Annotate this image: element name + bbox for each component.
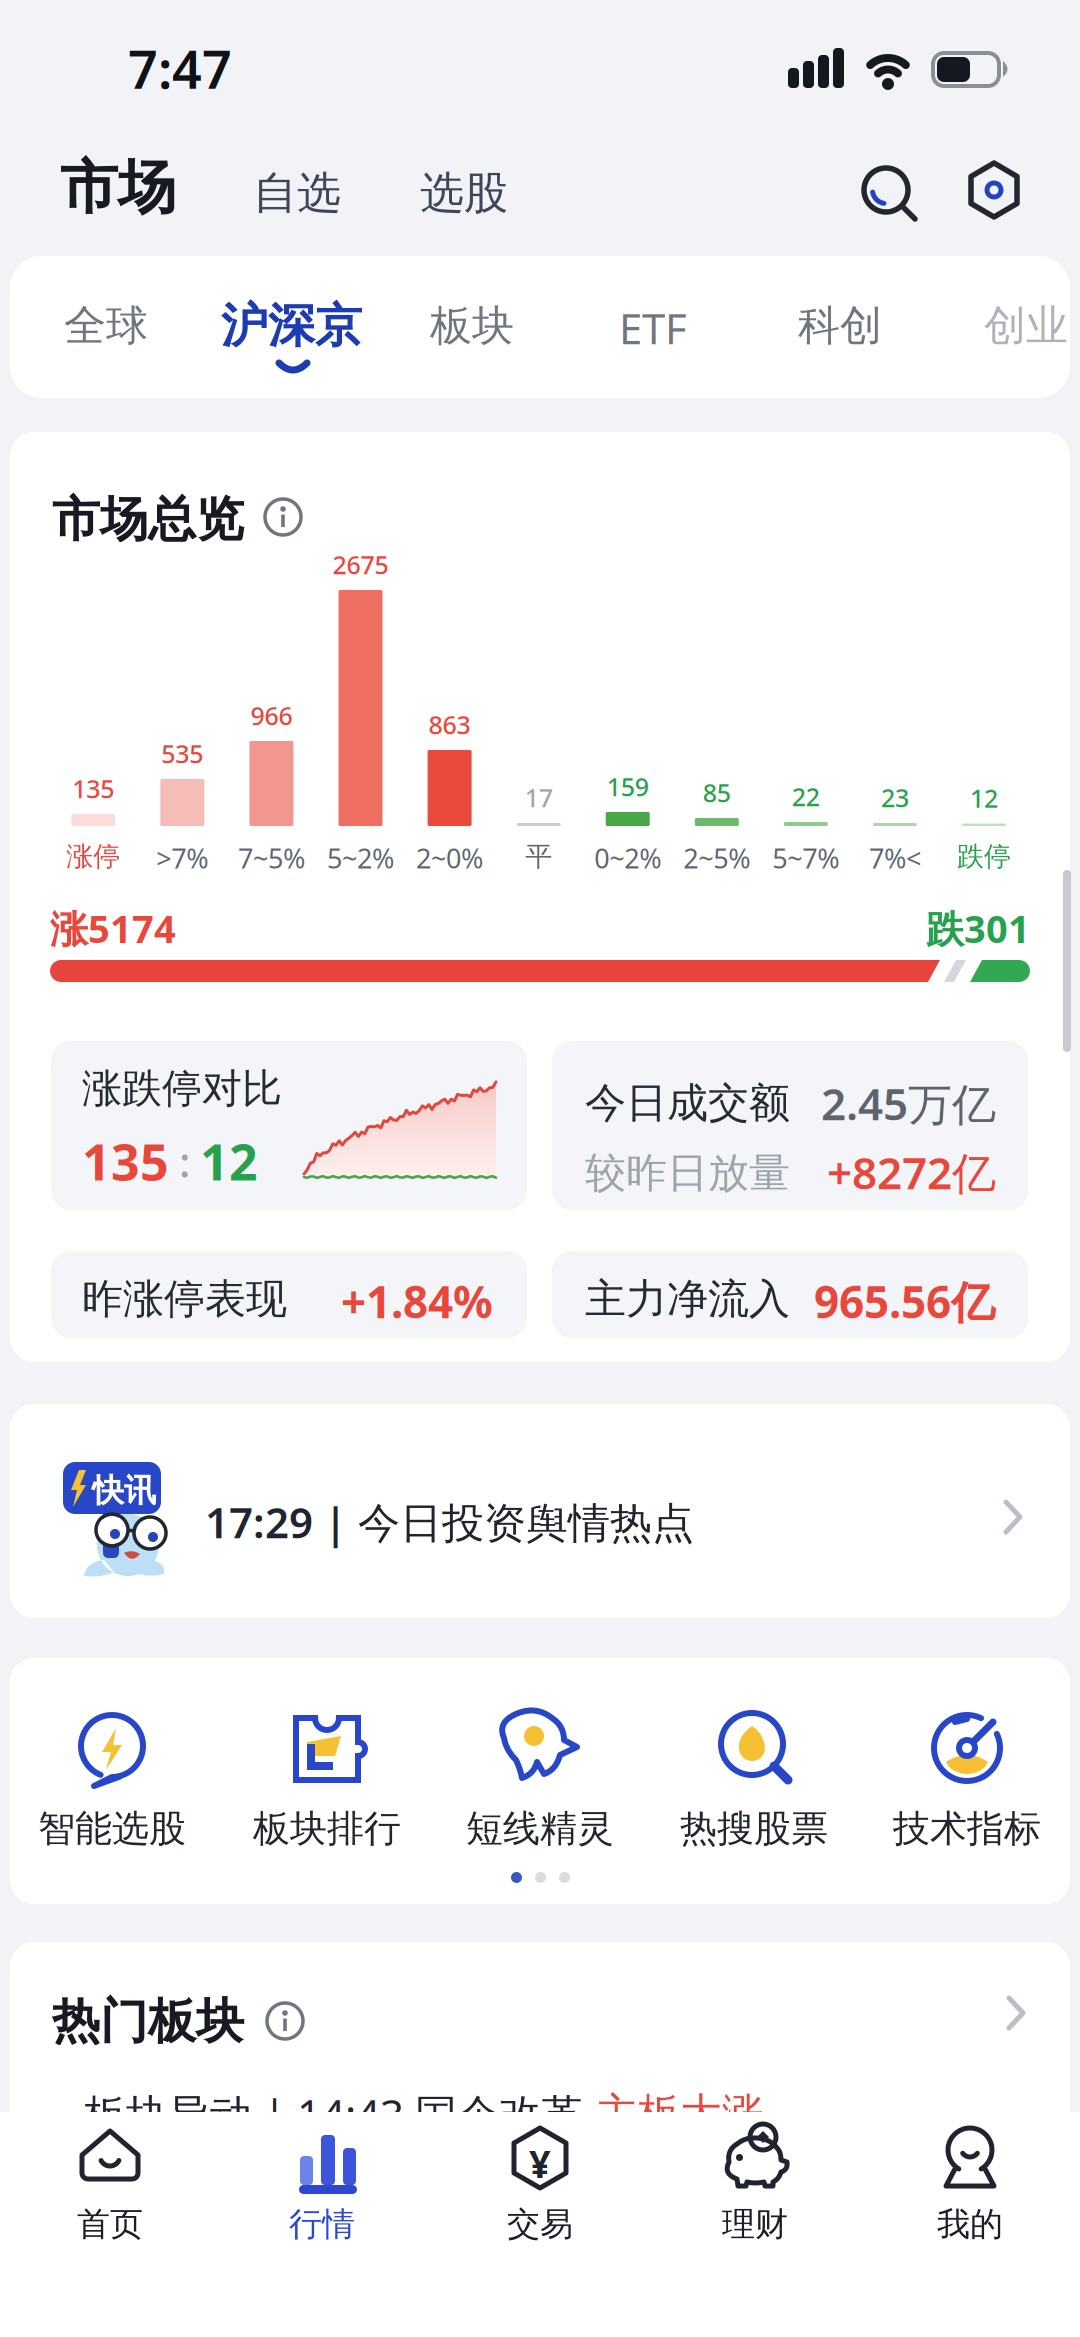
staticText: 板块异动 | 14:43 国企改革 [84, 2086, 596, 2142]
staticText: 涨5174 [50, 903, 176, 953]
staticText: 行情 [289, 2204, 355, 2244]
staticText: 板块排行 [253, 1806, 401, 1851]
staticText: ETF [619, 300, 687, 356]
button[interactable]: 热门板块 [10, 1942, 1070, 2062]
staticText: +8272亿 [827, 1143, 996, 1201]
staticText: 技术指标 [893, 1806, 1041, 1851]
staticText: 跌停 [957, 840, 1011, 873]
staticText: 7:47 [128, 34, 232, 103]
staticText: 7~5% [238, 840, 305, 876]
staticText: 昨涨停表现 [82, 1274, 287, 1324]
staticText: 智能选股 [38, 1806, 186, 1851]
staticText: 5~7% [772, 840, 839, 876]
button[interactable]: 首页 [40, 2112, 180, 2262]
staticText: 135 [82, 1128, 169, 1194]
staticText: 短线精灵 [466, 1806, 614, 1851]
staticText: +1.84% [341, 1272, 493, 1330]
staticText: 选股 [420, 166, 508, 220]
button[interactable]: ¥ [470, 2112, 610, 2262]
staticText: 首页 [77, 2204, 143, 2244]
staticText: 12 [970, 781, 998, 815]
staticText: 5~2% [327, 840, 394, 876]
button[interactable]: 快讯 [10, 1404, 1070, 1618]
button[interactable]: 自选 [253, 166, 341, 220]
staticText: 热门板块 [52, 1992, 244, 2051]
button[interactable]: 板块 [430, 300, 514, 352]
staticText: 0~2% [594, 840, 661, 876]
staticText: 科创 [798, 300, 882, 352]
staticText: : [179, 1133, 190, 1189]
staticText: 2~5% [683, 840, 750, 876]
staticText: 理财 [722, 2204, 788, 2244]
staticText: 涨停 [66, 840, 120, 873]
button[interactable]: 热搜股票 [654, 1700, 854, 1851]
button[interactable]: 理财 [685, 2112, 825, 2262]
staticText: 主板大涨 [596, 2088, 764, 2140]
staticText: >7% [156, 840, 208, 876]
button[interactable]: 科创 [798, 300, 882, 352]
staticText: 热搜股票 [680, 1806, 828, 1851]
button[interactable]: 行情 [252, 2112, 392, 2262]
button[interactable]: 短线精灵 [440, 1700, 640, 1851]
staticText: 17 [525, 781, 553, 814]
staticText: 交易 [507, 2204, 573, 2244]
staticText: 966 [250, 699, 292, 732]
staticText: 市场总览 [52, 490, 244, 549]
button[interactable]: 市场总览说明 [263, 497, 303, 537]
staticText: 板块 [430, 300, 514, 352]
staticText: 我的 [937, 2204, 1003, 2244]
button[interactable]: 全球 [64, 300, 148, 352]
staticText: 创业 [984, 300, 1068, 352]
staticText: 快讯 [92, 1471, 156, 1510]
staticText: 较昨日放量 [585, 1148, 790, 1198]
staticText: 965.56亿 [814, 1272, 995, 1330]
staticText: 7%< [869, 840, 921, 876]
staticText: 2675 [332, 548, 388, 581]
staticText: 全球 [64, 300, 148, 352]
button[interactable]: 智能选股 [12, 1700, 212, 1851]
staticText: 自选 [253, 166, 341, 220]
staticText: ¥ [529, 2138, 551, 2188]
staticText: 主力净流入 [585, 1274, 790, 1324]
staticText: 今日成交额 [585, 1078, 790, 1128]
staticText: 平 [525, 840, 552, 873]
staticText: 135 [72, 772, 114, 805]
staticText: 23 [881, 781, 909, 814]
button[interactable]: 市场 [60, 152, 176, 223]
button[interactable]: 创业 [984, 300, 1068, 352]
staticText: 17:29 | 今日投资舆情热点 [205, 1494, 694, 1550]
staticText: 沪深京 [221, 297, 362, 355]
button[interactable]: 选股 [420, 166, 508, 220]
staticText: 863 [429, 708, 471, 741]
staticText: 85 [703, 776, 731, 809]
staticText: 2.45万亿 [821, 1074, 996, 1132]
staticText: 12 [200, 1128, 258, 1194]
button[interactable]: 消息设置 [966, 160, 1022, 220]
staticText: 535 [161, 737, 203, 770]
button[interactable]: 沪深京 [221, 297, 371, 381]
button[interactable]: 技术指标 [867, 1700, 1067, 1851]
staticText: 159 [607, 770, 649, 803]
staticText: 2~0% [416, 840, 483, 876]
button[interactable]: 搜索 [858, 162, 922, 226]
button[interactable]: ETF [619, 300, 687, 356]
staticText: 市场 [60, 152, 176, 223]
staticText: 22 [792, 780, 820, 813]
button[interactable]: 我的 [900, 2112, 1040, 2262]
staticText: 涨跌停对比 [82, 1064, 282, 1113]
button[interactable]: 板块排行 [227, 1700, 427, 1851]
staticText: 跌301 [926, 903, 1030, 953]
